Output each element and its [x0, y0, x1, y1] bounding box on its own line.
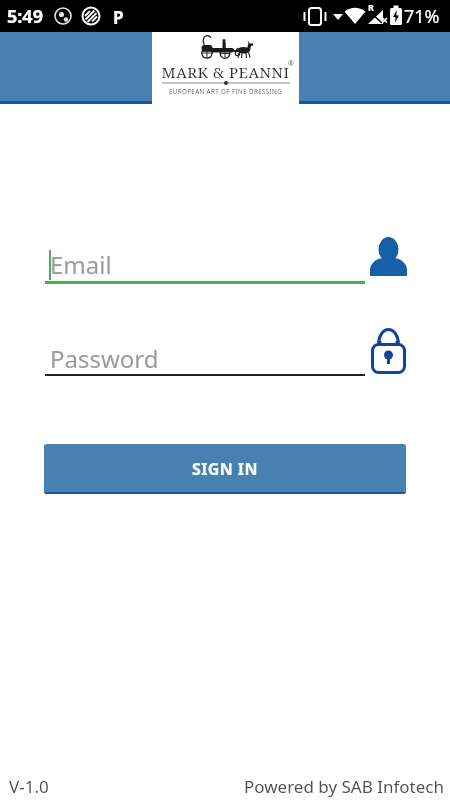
button[interactable]	[371, 328, 406, 375]
staticText: Email	[50, 248, 112, 281]
button[interactable]: SIGN IN	[44, 444, 406, 494]
staticText: 71%	[404, 4, 440, 29]
staticText: 5:49	[7, 4, 43, 29]
staticText: P	[113, 6, 124, 29]
staticText: Password	[50, 342, 159, 375]
button[interactable]	[370, 237, 407, 276]
staticText: MARK & PEANNI	[152, 62, 299, 82]
staticText: EUROPEAN ART OF FINE DRESSING	[152, 87, 299, 95]
staticText: R	[368, 1, 374, 13]
staticText: Powered by SAB Infotech	[244, 775, 444, 798]
staticText: V-1.0	[9, 775, 49, 798]
staticText: SIGN IN	[192, 458, 258, 480]
button[interactable]	[45, 328, 407, 376]
staticText: ®	[288, 59, 294, 69]
button[interactable]	[45, 237, 407, 284]
